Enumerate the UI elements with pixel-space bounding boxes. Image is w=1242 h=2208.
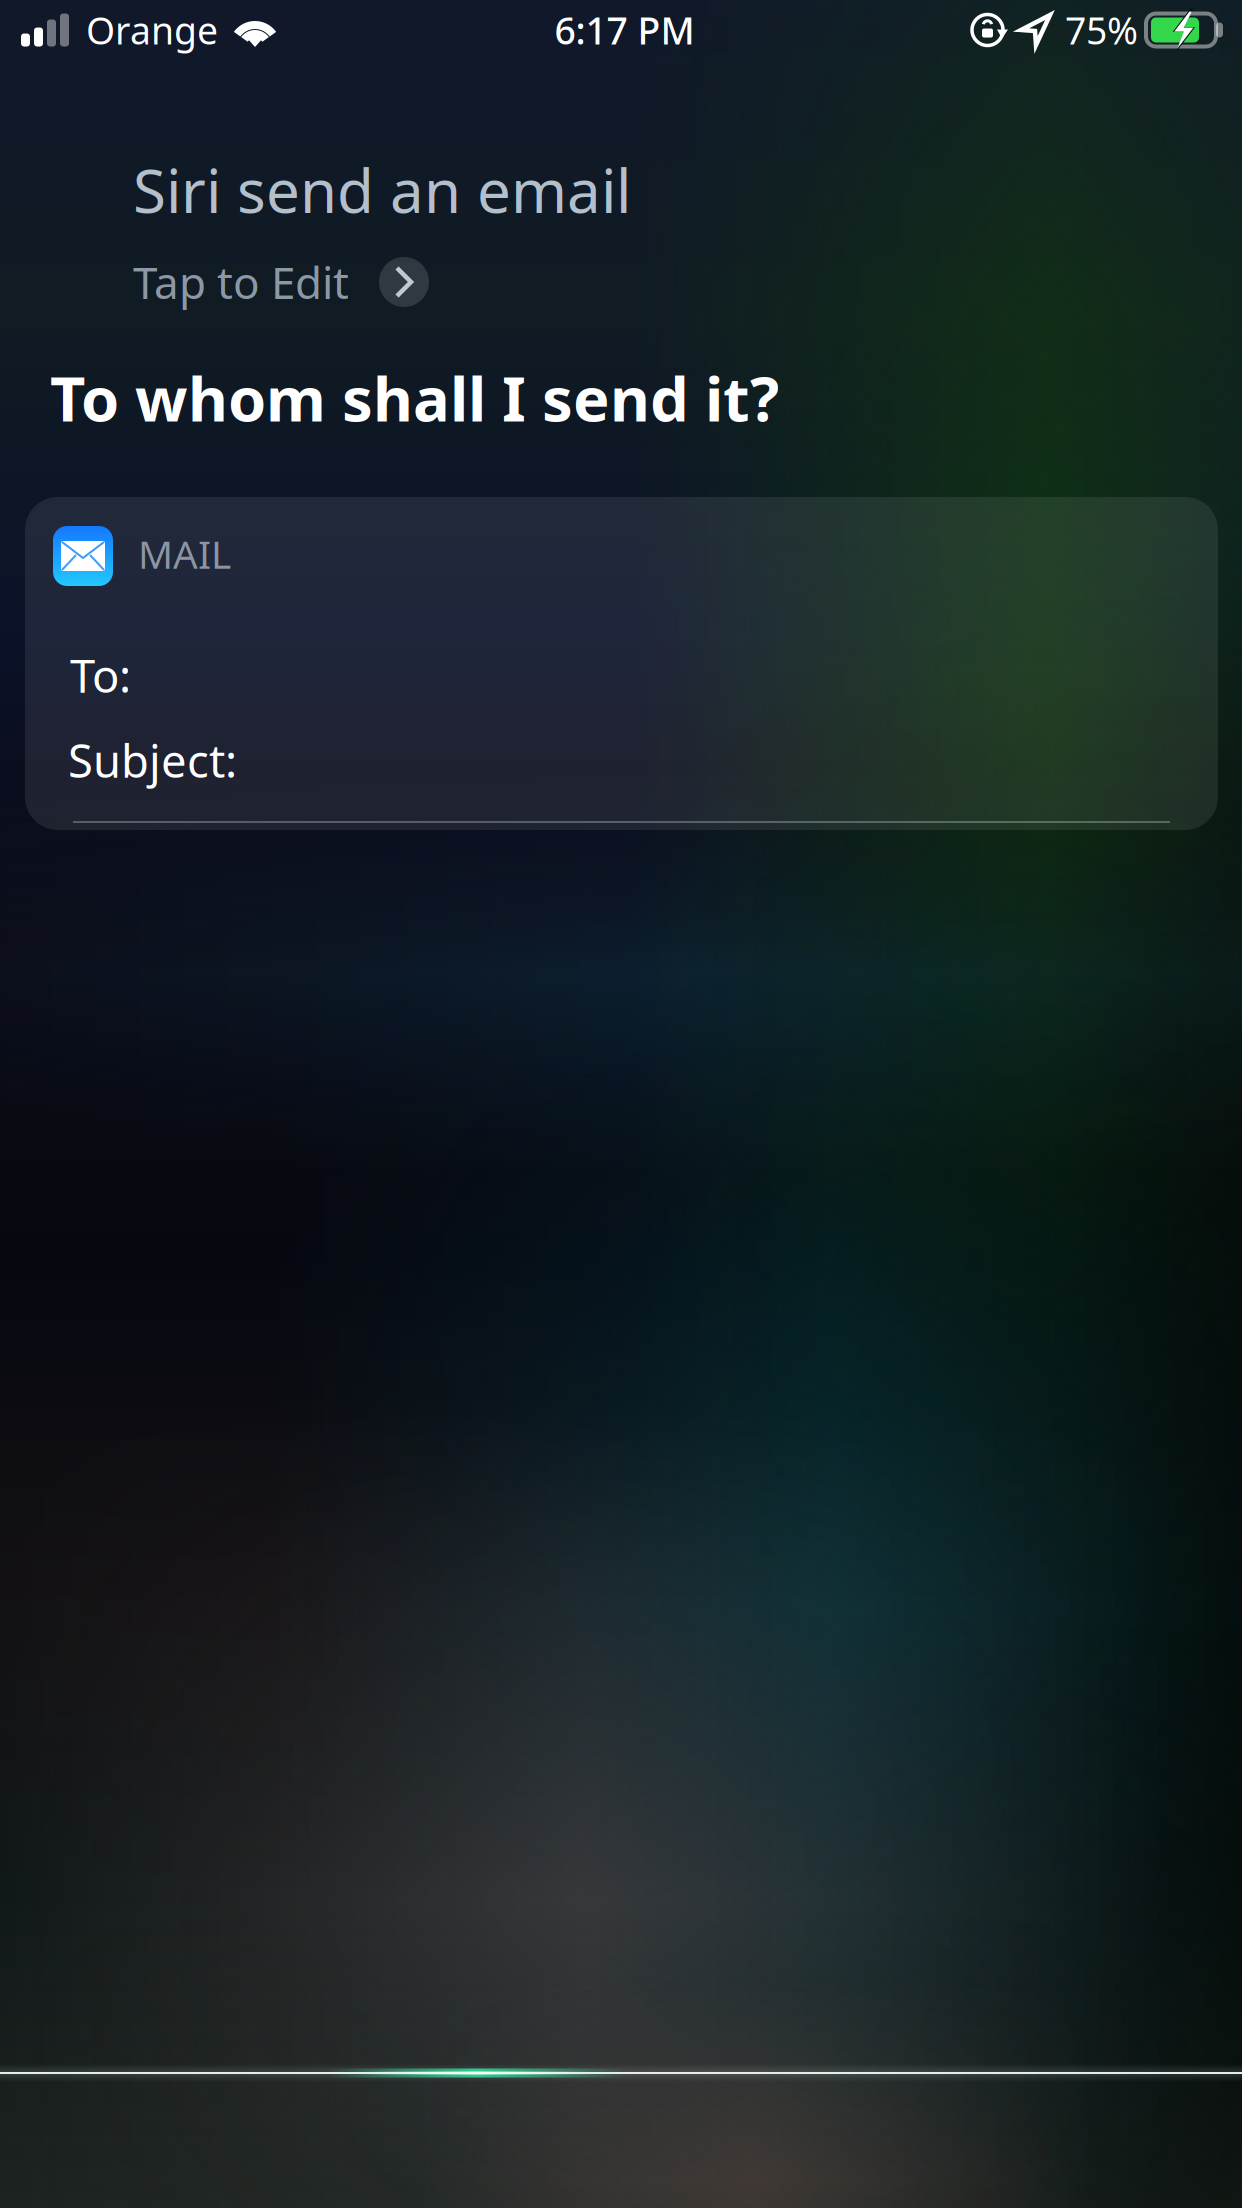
staticText: Tap to Edit bbox=[133, 253, 349, 311]
staticText: 75% bbox=[1065, 5, 1138, 55]
staticText: To whom shall I send it? bbox=[50, 357, 779, 438]
staticText: Subject: bbox=[68, 730, 237, 790]
staticText: To: bbox=[70, 645, 131, 705]
staticText: Orange bbox=[86, 5, 218, 55]
staticText: 6:17 PM bbox=[554, 5, 694, 55]
button[interactable]: MAIL bbox=[25, 497, 1218, 830]
staticText: Siri send an email bbox=[133, 150, 631, 230]
staticText: MAIL bbox=[138, 528, 231, 579]
button[interactable]: Tap to Edit bbox=[133, 254, 429, 310]
